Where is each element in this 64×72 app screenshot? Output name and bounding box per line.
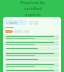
button[interactable] xyxy=(5,69,59,72)
button[interactable] xyxy=(5,47,59,51)
button[interactable]: Search xyxy=(5,20,27,25)
button[interactable] xyxy=(5,35,59,40)
staticText: certified xyxy=(24,6,42,12)
button[interactable]: Filter option xyxy=(24,30,30,33)
staticText: Search xyxy=(9,21,18,25)
button[interactable] xyxy=(5,58,59,62)
button[interactable] xyxy=(5,63,59,68)
button[interactable] xyxy=(5,41,59,46)
staticText: Powered by xyxy=(20,0,45,6)
button[interactable]: Selected filter xyxy=(5,30,13,33)
button[interactable]: Filter option xyxy=(14,30,23,33)
staticText: experts xyxy=(25,12,41,17)
button[interactable] xyxy=(5,52,59,57)
